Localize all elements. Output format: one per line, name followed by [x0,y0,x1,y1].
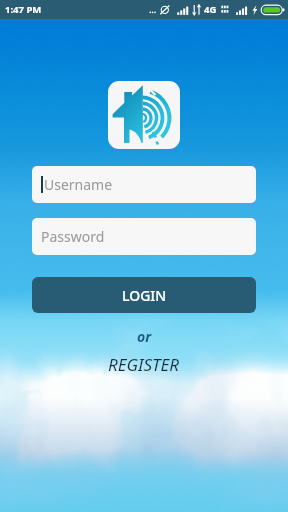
staticText: 1:47 PM [5,3,42,16]
staticText: 4G [204,3,217,16]
button[interactable]: LOGIN [32,277,256,313]
staticText: Password [41,227,105,246]
staticText: Username [44,175,113,194]
button[interactable]: App logo [108,81,180,149]
staticText: LOGIN [122,286,167,305]
staticText: REGISTER [108,353,180,376]
button[interactable]: REGISTER [98,351,190,378]
button[interactable]: Password [32,218,256,255]
staticText: or [137,327,152,346]
button[interactable]: Username [32,166,256,203]
